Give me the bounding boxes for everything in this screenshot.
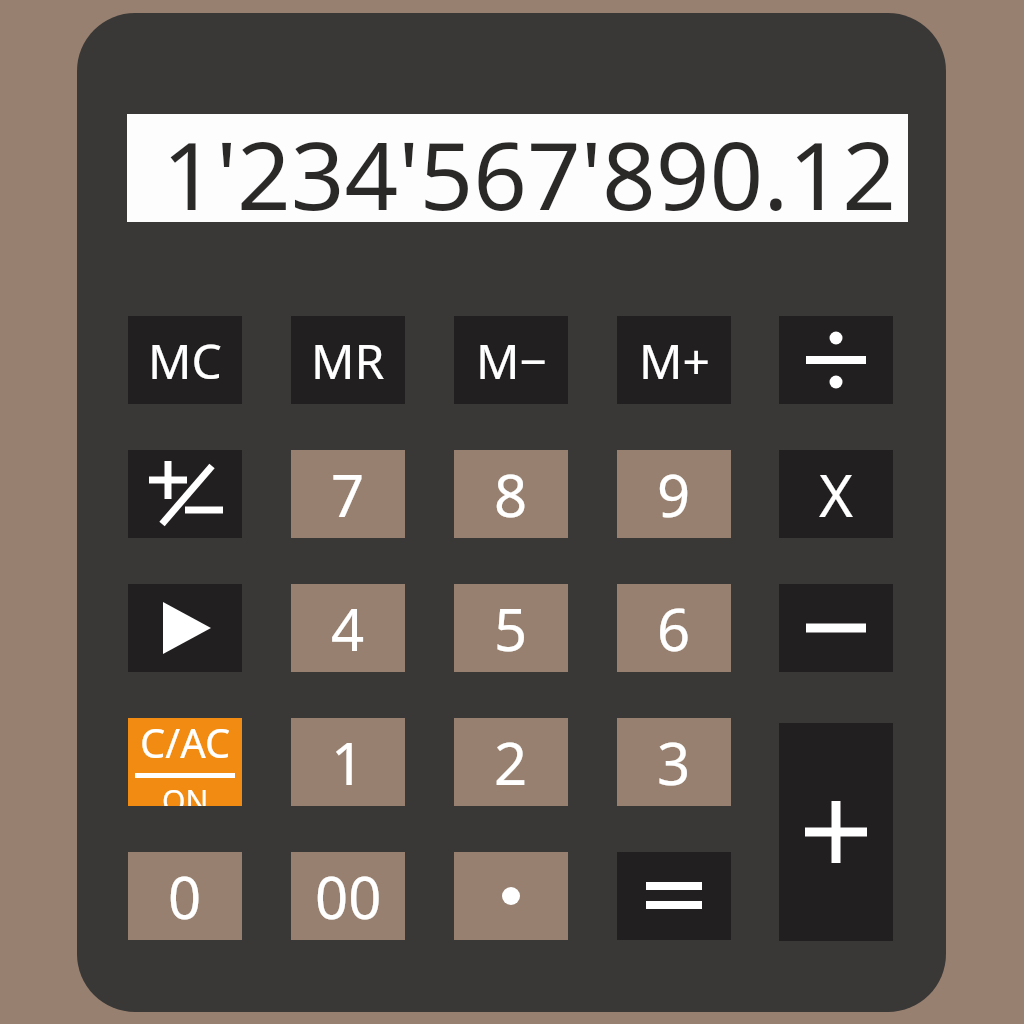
button[interactable]: MR — [291, 316, 405, 404]
button[interactable]: 2 — [454, 718, 568, 806]
button[interactable]: 0 — [128, 852, 242, 940]
staticText: 1 — [331, 723, 365, 802]
button[interactable]: 00 — [291, 852, 405, 940]
staticText: 4 — [331, 589, 365, 668]
staticText: 2 — [494, 723, 528, 802]
button[interactable]: 6 — [617, 584, 731, 672]
button[interactable]: Minus — [779, 584, 893, 672]
staticText: 7 — [331, 455, 365, 534]
staticText: 5 — [494, 589, 528, 668]
staticText: M+ — [639, 328, 710, 393]
button[interactable]: Divide — [779, 316, 893, 404]
staticText: 3 — [657, 723, 691, 802]
button[interactable]: 9 — [617, 450, 731, 538]
button[interactable]: 4 — [291, 584, 405, 672]
staticText: 00 — [315, 857, 382, 936]
button[interactable]: M− — [454, 316, 568, 404]
button[interactable]: X — [779, 450, 893, 538]
staticText: X — [819, 455, 853, 534]
staticText: 8 — [494, 455, 528, 534]
staticText: MR — [311, 328, 385, 393]
button[interactable]: 7 — [291, 450, 405, 538]
button[interactable]: M+ — [617, 316, 731, 404]
staticText: M− — [476, 328, 547, 393]
button[interactable]: 1 — [291, 718, 405, 806]
button[interactable]: Decimal point — [454, 852, 568, 940]
button[interactable]: Equals — [617, 852, 731, 940]
staticText: 9 — [657, 455, 691, 534]
staticText: 0 — [168, 857, 202, 936]
button[interactable]: C/AC — [128, 718, 242, 806]
button[interactable]: Plus — [779, 723, 893, 941]
button[interactable]: Play — [128, 584, 242, 672]
button[interactable]: MC — [128, 316, 242, 404]
staticText: 6 — [657, 589, 691, 668]
staticText: ON — [162, 780, 209, 806]
staticText: C/AC — [140, 715, 231, 769]
button[interactable]: 8 — [454, 450, 568, 538]
staticText: 1'234'567'890.12 — [162, 110, 896, 218]
button[interactable]: 5 — [454, 584, 568, 672]
button[interactable]: 3 — [617, 718, 731, 806]
button[interactable]: Sign change — [128, 450, 242, 538]
staticText: MC — [148, 328, 222, 393]
